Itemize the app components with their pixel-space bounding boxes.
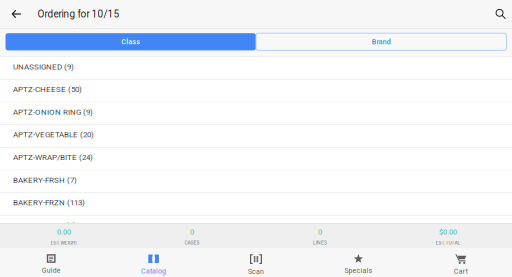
staticText: Catalog [141,267,166,275]
button[interactable]: Brand [256,33,506,50]
staticText: Ordering for 10/15 [37,8,119,20]
button[interactable]: Class [5,33,256,50]
staticText: BAKERY-MISC (4) [13,221,76,230]
button[interactable]: APTZ-WRAP/BITE (24) [0,148,512,170]
button[interactable]: BAKERY-FRZN (113) [0,193,512,216]
staticText: Brand [372,38,391,46]
button[interactable]: APTZ-VEGETABLE (20) [0,125,512,148]
button[interactable]: BAKERY-MISC (4) [0,216,512,238]
staticText: Guide [42,266,61,274]
staticText: BAKERY-FRZN (113) [13,198,85,207]
staticText: 0 [190,228,194,236]
staticText: EST. WEIGHT [50,240,77,246]
button[interactable]: BAKERY-FRSH (7) [0,170,512,193]
staticText: APTZ-CHEESE (50) [13,85,82,94]
staticText: APTZ-VEGETABLE (20) [13,130,94,139]
staticText: $0.00 [439,228,457,236]
staticText: APTZ-ONION RING (9) [13,107,93,117]
staticText: EST. TOTAL [435,240,460,246]
staticText: LINES [313,240,327,246]
button[interactable]: Guide [0,248,102,277]
staticText: Class [121,38,140,46]
staticText: Scan [248,268,264,276]
button[interactable]: Specials [307,248,410,277]
staticText: Cart [454,267,468,275]
button[interactable]: APTZ-CHEESE (50) [0,80,512,102]
button[interactable]: Catalog [102,248,205,277]
staticText: 0 [318,228,322,236]
staticText: BAKERY-FRSH (7) [13,175,77,185]
staticText: APTZ-WRAP/BITE (24) [13,153,93,162]
button[interactable]: UNASSIGNED (9) [0,57,512,80]
button[interactable]: Back [0,0,37,28]
staticText: CASES [184,240,199,246]
button[interactable]: Cart [410,248,512,277]
staticText: UNASSIGNED (9) [13,62,74,71]
button[interactable]: Scan [205,248,307,277]
staticText: 0.00 [57,228,71,236]
button[interactable]: Search [484,0,512,28]
button[interactable]: APTZ-ONION RING (9) [0,102,512,125]
staticText: Specials [344,267,372,275]
